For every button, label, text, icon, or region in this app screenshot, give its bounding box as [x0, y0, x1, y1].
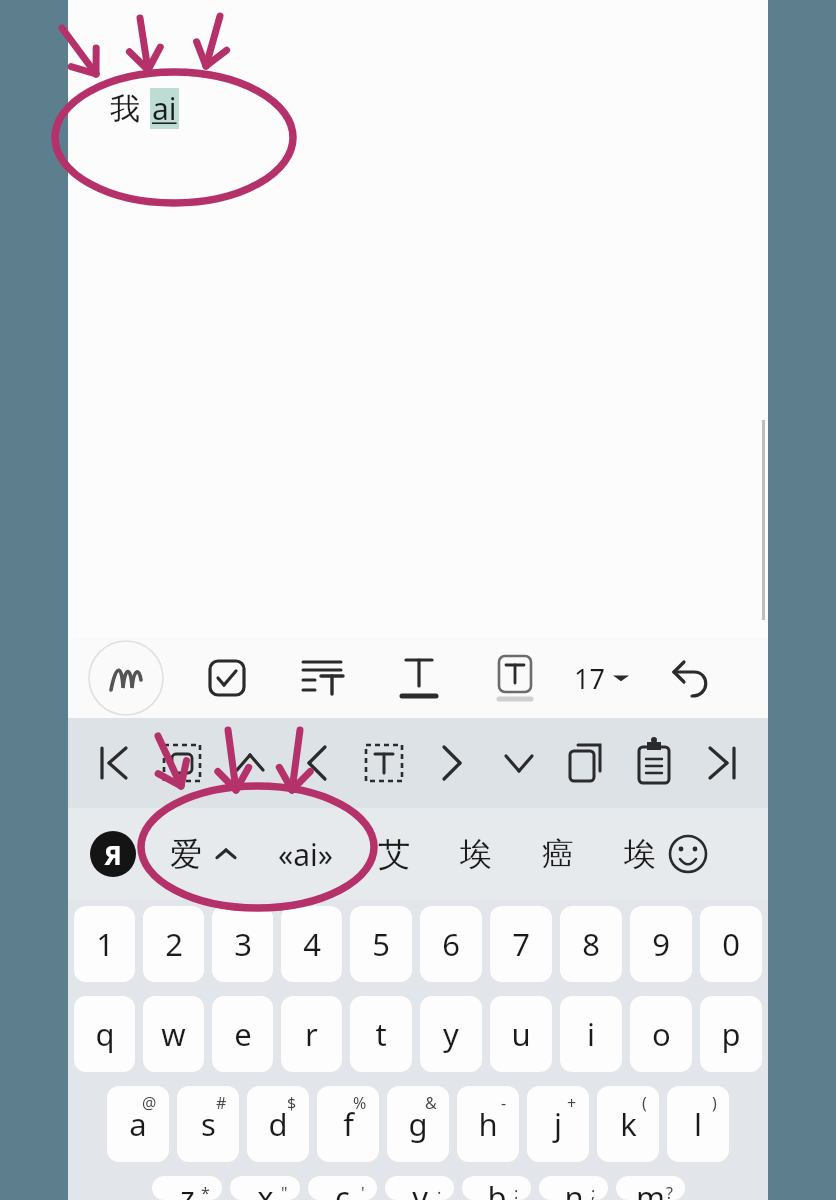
- button[interactable]: f: [317, 1086, 379, 1162]
- staticText: s: [201, 1103, 216, 1145]
- button[interactable]: Previous: [286, 732, 348, 794]
- button[interactable]: Input method settings: [90, 831, 136, 877]
- staticText: 我: [110, 90, 140, 128]
- staticText: @: [142, 1092, 157, 1114]
- staticText: «ai»: [278, 834, 334, 875]
- button[interactable]: 3: [212, 906, 273, 982]
- button[interactable]: q: [74, 996, 135, 1072]
- staticText: 4: [303, 923, 321, 965]
- button[interactable]: Paste: [623, 732, 685, 794]
- staticText: 2: [165, 923, 183, 965]
- button[interactable]: k: [597, 1086, 659, 1162]
- button[interactable]: «ai»: [278, 808, 334, 900]
- staticText: Я: [104, 837, 122, 872]
- staticText: ·: [437, 1182, 442, 1200]
- staticText: -: [501, 1092, 507, 1114]
- button[interactable]: Text box: [480, 643, 550, 713]
- staticText: t: [375, 1013, 387, 1055]
- staticText: f: [343, 1103, 354, 1145]
- button[interactable]: e: [212, 996, 273, 1072]
- button[interactable]: Undo: [655, 643, 725, 713]
- button[interactable]: First: [84, 732, 146, 794]
- staticText: z: [180, 1176, 195, 1200]
- button[interactable]: d: [247, 1086, 309, 1162]
- button[interactable]: Next: [421, 732, 483, 794]
- staticText: $: [287, 1092, 297, 1114]
- button[interactable]: 4: [281, 906, 342, 982]
- staticText: i: [587, 1013, 595, 1055]
- button[interactable]: j: [527, 1086, 589, 1162]
- staticText: d: [268, 1103, 288, 1145]
- staticText: b: [487, 1176, 507, 1200]
- button[interactable]: Select text: [353, 732, 415, 794]
- button[interactable]: z: [152, 1176, 222, 1200]
- button[interactable]: 0: [700, 906, 762, 982]
- button[interactable]: u: [490, 996, 552, 1072]
- staticText: ai: [152, 88, 177, 129]
- button[interactable]: Emoji: [662, 828, 714, 880]
- staticText: &: [425, 1092, 437, 1114]
- staticText: 爱: [170, 834, 202, 874]
- staticText: 8: [582, 923, 600, 965]
- button[interactable]: h: [457, 1086, 519, 1162]
- staticText: y: [443, 1013, 459, 1055]
- button[interactable]: 埃: [624, 808, 656, 900]
- staticText: ": [281, 1182, 288, 1200]
- button[interactable]: 5: [350, 906, 412, 982]
- staticText: 6: [442, 923, 460, 965]
- button[interactable]: Copy: [555, 732, 617, 794]
- button[interactable]: b: [462, 1176, 531, 1200]
- button[interactable]: r: [281, 996, 342, 1072]
- button[interactable]: l: [667, 1086, 729, 1162]
- button[interactable]: 6: [420, 906, 482, 982]
- button[interactable]: n: [539, 1176, 608, 1200]
- button[interactable]: i: [560, 996, 622, 1072]
- staticText: e: [234, 1013, 252, 1055]
- button[interactable]: p: [700, 996, 762, 1072]
- staticText: 3: [234, 923, 252, 965]
- button[interactable]: y: [420, 996, 482, 1072]
- button[interactable]: g: [387, 1086, 449, 1162]
- button[interactable]: o: [630, 996, 692, 1072]
- button[interactable]: Last: [690, 732, 752, 794]
- staticText: c: [335, 1176, 350, 1200]
- button[interactable]: 1: [74, 906, 135, 982]
- staticText: 17: [574, 660, 605, 697]
- button[interactable]: a: [107, 1086, 169, 1162]
- button[interactable]: t: [350, 996, 412, 1072]
- button[interactable]: 7: [490, 906, 552, 982]
- staticText: 癌: [542, 834, 574, 874]
- button[interactable]: Handwriting: [86, 638, 166, 718]
- staticText: x: [257, 1176, 274, 1200]
- staticText: *: [201, 1182, 210, 1200]
- button[interactable]: v: [385, 1176, 454, 1200]
- staticText: 艾: [378, 834, 410, 874]
- staticText: g: [408, 1103, 428, 1145]
- button[interactable]: Up: [219, 732, 281, 794]
- button[interactable]: 艾: [378, 808, 410, 900]
- button[interactable]: 癌: [542, 808, 574, 900]
- button[interactable]: Down: [488, 732, 550, 794]
- button[interactable]: 9: [630, 906, 692, 982]
- button[interactable]: m: [616, 1176, 685, 1200]
- button[interactable]: w: [143, 996, 204, 1072]
- button[interactable]: s: [177, 1086, 239, 1162]
- staticText: 7: [512, 923, 530, 965]
- button[interactable]: Select object: [151, 732, 213, 794]
- button[interactable]: x: [230, 1176, 300, 1200]
- button[interactable]: Paragraph style: [288, 643, 358, 713]
- button[interactable]: 埃: [460, 808, 492, 900]
- button[interactable]: c: [308, 1176, 377, 1200]
- staticText: 埃: [460, 834, 492, 874]
- button[interactable]: 8: [560, 906, 622, 982]
- staticText: ?: [666, 1182, 673, 1200]
- button[interactable]: 爱: [170, 808, 236, 900]
- button[interactable]: Text format: [384, 643, 454, 713]
- button[interactable]: Checklist: [192, 643, 262, 713]
- button[interactable]: 2: [143, 906, 204, 982]
- button[interactable]: 17: [568, 643, 635, 713]
- staticText: (: [642, 1092, 647, 1114]
- staticText: r: [305, 1013, 318, 1055]
